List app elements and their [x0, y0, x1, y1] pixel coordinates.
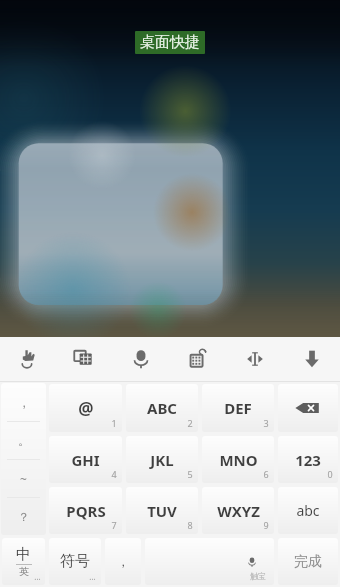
staticText: ABC — [147, 398, 177, 418]
staticText: @ — [78, 397, 94, 420]
button[interactable]: JKL — [126, 436, 198, 483]
staticText: DEF — [224, 398, 252, 418]
button[interactable]: ~ — [1, 460, 46, 497]
button[interactable]: 中 — [2, 538, 45, 585]
staticText: 0 — [327, 468, 333, 480]
button[interactable]: ， — [1, 383, 46, 421]
staticText: 1 — [111, 417, 117, 429]
staticText: 2 — [187, 417, 193, 429]
staticText: 符号 — [60, 552, 90, 571]
staticText: WXYZ — [217, 501, 260, 521]
staticText: ~ — [20, 471, 27, 487]
staticText: 桌面快捷 — [140, 33, 200, 52]
button[interactable]: @ — [49, 384, 122, 432]
staticText: MNO — [219, 450, 258, 470]
staticText: 3 — [263, 417, 269, 429]
staticText: GHI — [71, 450, 100, 470]
staticText: ， — [18, 395, 30, 410]
staticText: 6 — [263, 468, 269, 480]
staticText: JKL — [150, 450, 174, 470]
button[interactable]: WXYZ — [202, 487, 274, 534]
button[interactable]: ？ — [1, 498, 46, 535]
staticText: 4 — [111, 468, 117, 480]
button[interactable]: MNO — [202, 436, 274, 483]
button[interactable]: Delete — [278, 384, 338, 432]
staticText: 。 — [18, 433, 30, 448]
staticText: 触宝 — [250, 571, 266, 581]
button[interactable]: Voice input — [112, 337, 169, 381]
button[interactable]: Keyboard layouts — [56, 337, 112, 381]
button[interactable]: GHI — [49, 436, 122, 483]
staticText: ... — [34, 571, 41, 582]
button[interactable]: Space — [145, 538, 274, 585]
staticText: 5 — [187, 468, 193, 480]
button[interactable]: ， — [105, 538, 141, 585]
button[interactable]: abc — [278, 487, 338, 534]
button[interactable]: 123 — [278, 436, 338, 483]
staticText: 123 — [295, 450, 321, 470]
staticText: PQRS — [66, 501, 106, 521]
button[interactable]: Switch input method — [169, 337, 226, 381]
staticText: abc — [296, 501, 320, 520]
button[interactable]: 。 — [1, 422, 46, 459]
button[interactable]: TUV — [126, 487, 198, 534]
button[interactable]: ABC — [126, 384, 198, 432]
button[interactable]: PQRS — [49, 487, 122, 534]
staticText: 9 — [263, 519, 269, 531]
staticText: ， — [117, 554, 129, 569]
staticText: 8 — [187, 519, 193, 531]
staticText: ... — [89, 571, 96, 582]
staticText: 英 — [19, 565, 29, 578]
button[interactable]: 桌面快捷 — [135, 31, 205, 54]
staticText: ？ — [18, 509, 30, 524]
staticText: 7 — [111, 519, 117, 531]
staticText: TUV — [147, 501, 177, 521]
button[interactable]: Resize keyboard — [226, 337, 283, 381]
button[interactable]: 完成 — [278, 538, 338, 585]
staticText: 完成 — [294, 553, 322, 571]
button[interactable]: Hide keyboard — [283, 337, 340, 381]
button[interactable]: 符号 — [49, 538, 101, 585]
button[interactable]: DEF — [202, 384, 274, 432]
staticText: 中 — [16, 545, 31, 564]
button[interactable]: Handwriting input — [0, 337, 56, 381]
